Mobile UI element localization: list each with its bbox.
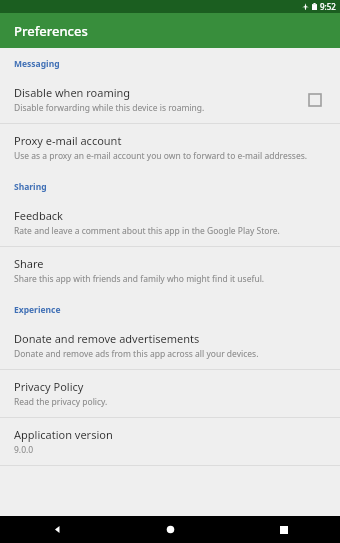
staticText: Privacy Policy: [14, 379, 84, 394]
button[interactable]: Disable when roaming: [0, 76, 340, 123]
staticText: Preferences: [14, 22, 88, 40]
staticText: Feedback: [14, 208, 63, 223]
staticText: Sharing: [14, 181, 47, 193]
staticText: Share this app with friends and family w…: [14, 273, 265, 285]
staticText: Donate and remove ads from this app acro…: [14, 348, 259, 360]
button[interactable]: Application version: [0, 418, 340, 465]
staticText: Disable when roaming: [14, 85, 131, 100]
button[interactable]: Disable when roaming checkbox: [302, 87, 328, 113]
staticText: Donate and remove advertisements: [14, 331, 200, 346]
button[interactable]: Home: [114, 516, 227, 543]
staticText: Proxy e-mail account: [14, 133, 122, 148]
staticText: Experience: [14, 304, 61, 316]
button[interactable]: Recent apps: [227, 516, 340, 543]
staticText: Application version: [14, 427, 113, 442]
staticText: Share: [14, 256, 44, 271]
staticText: Rate and leave a comment about this app …: [14, 225, 280, 237]
staticText: 9:52: [320, 1, 336, 12]
button[interactable]: Back: [0, 516, 114, 543]
button[interactable]: Donate and remove advertisements: [0, 322, 340, 369]
staticText: Disable forwarding while this device is …: [14, 102, 205, 114]
button[interactable]: Privacy Policy: [0, 370, 340, 417]
button[interactable]: Proxy e-mail account: [0, 124, 340, 171]
button[interactable]: Share: [0, 247, 340, 294]
button[interactable]: Feedback: [0, 199, 340, 246]
staticText: 9.0.0: [14, 444, 34, 456]
staticText: Use as a proxy an e-mail account you own…: [14, 150, 308, 162]
staticText: Read the privacy policy.: [14, 396, 108, 408]
staticText: Messaging: [14, 58, 60, 70]
